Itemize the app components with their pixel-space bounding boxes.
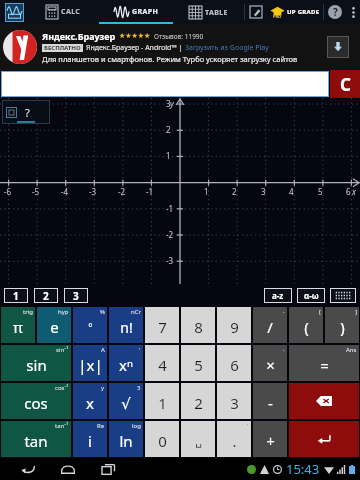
staticText: -1 bbox=[146, 186, 154, 197]
button[interactable]: 2 bbox=[181, 383, 215, 419]
button[interactable]: PRO bbox=[267, 0, 323, 24]
button[interactable]: Enter bbox=[289, 421, 359, 457]
button[interactable]: - bbox=[253, 383, 287, 419]
button[interactable]: App icon bbox=[0, 0, 28, 24]
staticText: 6 bbox=[346, 186, 351, 197]
button[interactable]: cos⁻¹ bbox=[1, 383, 71, 419]
button[interactable]: 9 bbox=[217, 307, 251, 343]
staticText: TABLE bbox=[205, 8, 228, 18]
staticText: · bbox=[283, 346, 285, 354]
button[interactable]: Recent apps bbox=[88, 458, 128, 480]
button[interactable]: 5 bbox=[181, 345, 215, 381]
staticText: Для планшетов и смартфонов. Режим Турбо … bbox=[42, 54, 298, 64]
staticText: 9 bbox=[230, 317, 239, 337]
button[interactable]: Download bbox=[327, 36, 349, 58]
staticText: sin⁻¹ bbox=[56, 346, 69, 354]
button[interactable]: TABLE bbox=[173, 0, 244, 24]
button[interactable]: ' bbox=[109, 345, 143, 381]
button[interactable]: Edit bbox=[245, 0, 267, 24]
staticText: БЕСПЛАТНО bbox=[44, 44, 81, 52]
staticText: cos bbox=[24, 393, 48, 413]
button[interactable]: tan⁻¹ bbox=[1, 421, 71, 457]
button[interactable]: Help bbox=[324, 0, 346, 24]
button[interactable]: Re bbox=[73, 421, 107, 457]
staticText: Отзывов: 11990 bbox=[154, 32, 204, 41]
staticText: 1 bbox=[204, 186, 209, 197]
button[interactable]: Keyboard bbox=[330, 288, 356, 303]
staticText: ln bbox=[119, 431, 133, 451]
button[interactable]: 0 bbox=[145, 421, 179, 457]
staticText: -3 bbox=[89, 186, 97, 197]
staticText: √ bbox=[121, 395, 131, 412]
staticText: ) bbox=[340, 317, 345, 337]
button[interactable]: hyp bbox=[37, 307, 71, 343]
button[interactable]: [ bbox=[289, 307, 323, 343]
button[interactable]: Backspace bbox=[289, 383, 359, 419]
button[interactable]: CALC bbox=[28, 0, 99, 24]
button[interactable]: 3 bbox=[109, 383, 143, 419]
staticText: nCr bbox=[131, 308, 141, 316]
button[interactable]: ' bbox=[217, 421, 251, 457]
button[interactable]: % bbox=[73, 307, 107, 343]
staticText: 7 bbox=[158, 317, 167, 337]
button[interactable]: y bbox=[73, 383, 107, 419]
button[interactable]: 2 bbox=[34, 288, 58, 303]
staticText: 2 bbox=[232, 186, 237, 197]
staticText: hyp bbox=[58, 308, 69, 316]
button[interactable]: α-ω bbox=[297, 288, 325, 303]
button[interactable]: Home bbox=[48, 458, 88, 480]
button[interactable]: sin⁻¹ bbox=[1, 345, 71, 381]
button[interactable]: + bbox=[253, 421, 287, 457]
button[interactable]: Ans bbox=[289, 345, 359, 381]
button[interactable]: ] bbox=[325, 307, 359, 343]
staticText: UP GRADE bbox=[287, 8, 320, 16]
staticText: π bbox=[13, 317, 23, 337]
button[interactable]: trig bbox=[1, 307, 35, 343]
staticText: y bbox=[170, 98, 174, 109]
staticText: ] bbox=[355, 308, 357, 316]
staticText: -2 bbox=[166, 229, 174, 240]
button[interactable]: 3 bbox=[64, 288, 88, 303]
button[interactable]: ␣ bbox=[181, 421, 215, 457]
button[interactable]: A bbox=[73, 345, 107, 381]
button[interactable]: Graph plot area bbox=[0, 98, 360, 284]
staticText: × bbox=[266, 355, 275, 375]
button[interactable]: nCr bbox=[109, 307, 143, 343]
button[interactable]: 6 bbox=[217, 345, 251, 381]
staticText: xⁿ bbox=[119, 355, 133, 375]
button[interactable]: 3 bbox=[217, 383, 251, 419]
button[interactable]: Back bbox=[8, 458, 48, 480]
button[interactable]: 1 bbox=[4, 288, 28, 303]
staticText: - bbox=[268, 393, 273, 413]
staticText: Re bbox=[97, 422, 105, 430]
button[interactable]: a-z bbox=[264, 288, 292, 303]
button[interactable]: · bbox=[253, 307, 287, 343]
button[interactable]: 1 bbox=[145, 383, 179, 419]
button[interactable]: 8 bbox=[181, 307, 215, 343]
staticText: trig bbox=[23, 308, 33, 316]
staticText: n! bbox=[120, 318, 133, 337]
staticText: ( bbox=[304, 317, 309, 337]
staticText: -4 bbox=[61, 186, 69, 197]
staticText: ★★★★★ bbox=[119, 32, 151, 40]
button[interactable]: 4 bbox=[145, 345, 179, 381]
staticText: a-z bbox=[272, 290, 284, 301]
staticText: C bbox=[340, 73, 351, 96]
button[interactable]: 7 bbox=[145, 307, 179, 343]
staticText: 8 bbox=[194, 317, 203, 337]
button[interactable]: Function entry bbox=[2, 100, 50, 124]
staticText: log bbox=[132, 422, 141, 430]
staticText: GRAPH bbox=[132, 7, 159, 17]
staticText: tan bbox=[24, 431, 48, 451]
button[interactable]: C bbox=[330, 70, 360, 98]
button[interactable]: Яндекс.Браузер bbox=[0, 24, 360, 70]
button[interactable]: log bbox=[109, 421, 143, 457]
staticText: 5 bbox=[318, 186, 323, 197]
button[interactable]: More options bbox=[346, 0, 360, 24]
staticText: -6 bbox=[4, 186, 12, 197]
button[interactable]: GRAPH bbox=[99, 0, 173, 24]
button[interactable]: · bbox=[253, 345, 287, 381]
staticText: 4 bbox=[289, 186, 294, 197]
button[interactable]: Expression input bbox=[1, 71, 329, 97]
staticText: 15:43 bbox=[286, 460, 320, 478]
